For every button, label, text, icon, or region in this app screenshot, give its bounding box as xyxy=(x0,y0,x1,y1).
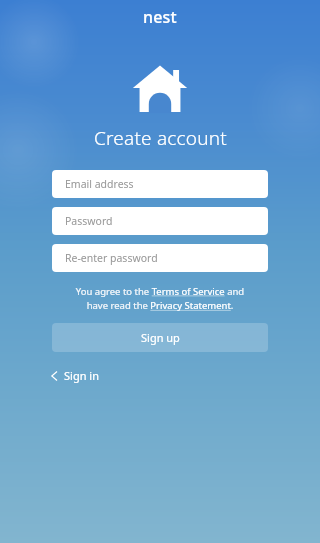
button[interactable]: Password xyxy=(52,207,268,235)
staticText: nest xyxy=(143,6,177,28)
staticText: Password xyxy=(65,214,113,228)
staticText: You agree to the Terms of Service and ha… xyxy=(52,285,268,312)
staticText: Sign up xyxy=(141,330,180,345)
button[interactable]: Email address xyxy=(52,170,268,198)
staticText: Re-enter password xyxy=(65,251,158,265)
staticText: Email address xyxy=(65,177,134,191)
button[interactable]: Sign up xyxy=(52,323,268,352)
other: Back xyxy=(50,370,59,382)
button[interactable]: Back xyxy=(44,364,105,387)
button[interactable]: Re-enter password xyxy=(52,244,268,272)
staticText: Create account xyxy=(94,125,227,151)
staticText: Sign in xyxy=(64,368,99,383)
